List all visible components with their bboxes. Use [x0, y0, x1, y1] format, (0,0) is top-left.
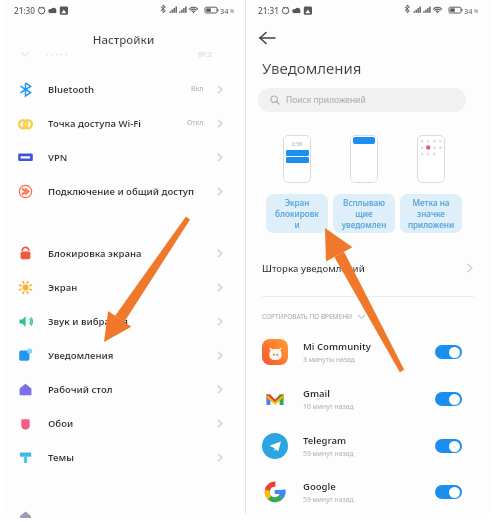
button[interactable]: Уведомления — [2, 338, 245, 372]
staticText: 34 — [220, 6, 229, 16]
staticText: Рабочий стол — [48, 383, 214, 396]
button[interactable]: Всплываю щие уведомлен — [333, 133, 395, 233]
button[interactable]: Подключение и общий доступ — [2, 174, 245, 208]
button[interactable]: Google — [246, 470, 490, 514]
staticText: Google — [303, 480, 336, 493]
staticText: 21:30 — [14, 5, 35, 16]
button[interactable]: Gmail — [246, 377, 490, 421]
button[interactable]: Звук и вибрация — [2, 304, 245, 338]
button[interactable]: Mi Community — [246, 330, 490, 374]
button[interactable]: Темы — [2, 440, 245, 474]
staticText: 59 минут назад — [303, 449, 354, 458]
button[interactable]: Метка на значке приложени — [400, 133, 462, 233]
staticText: Уведомления — [48, 349, 214, 362]
button[interactable]: 2:56 — [266, 133, 328, 233]
staticText: Telegram — [303, 434, 347, 447]
staticText: · · · · · — [46, 48, 68, 60]
staticText: 34 — [464, 6, 473, 16]
button[interactable]: Точка доступа Wi-Fi — [2, 106, 245, 140]
staticText: Настройки — [2, 32, 245, 48]
staticText: 10 минут назад — [303, 402, 354, 411]
staticText: 3 минуты назад — [303, 355, 355, 364]
staticText: % — [474, 8, 479, 15]
button[interactable]: СОРТИРОВАТЬ ПО ВРЕМЕНИ — [246, 308, 490, 324]
staticText: СОРТИРОВАТЬ ПО ВРЕМЕНИ — [262, 312, 352, 321]
button[interactable]: Back — [257, 27, 279, 49]
staticText: Метка на значке приложени — [404, 197, 458, 230]
staticText: % — [230, 8, 235, 15]
staticText: Вкл — [191, 84, 204, 94]
staticText: Экран — [48, 281, 214, 294]
button[interactable]: Экран — [2, 270, 245, 304]
staticText: Подключение и общий доступ — [48, 185, 214, 198]
staticText: Всплываю щие уведомлен — [336, 197, 392, 230]
button[interactable]: VPN — [2, 140, 245, 174]
button[interactable]: Обои — [2, 406, 245, 440]
staticText: Mi Community — [303, 340, 372, 353]
staticText: Блокировка экрана — [48, 247, 214, 260]
staticText: 2:56 — [283, 140, 311, 147]
staticText: Поиск приложений — [286, 94, 366, 106]
button[interactable]: Блокировка экрана — [2, 236, 245, 270]
staticText: Уведомления — [262, 58, 362, 78]
staticText: 21:31 — [258, 5, 279, 16]
staticText: Точка доступа Wi-Fi — [48, 117, 187, 130]
staticText: Обои — [48, 417, 214, 430]
button[interactable]: Bluetooth — [2, 72, 245, 106]
staticText: VPN — [48, 151, 214, 164]
staticText: 59 минут назад — [303, 495, 354, 504]
staticText: Темы — [48, 451, 214, 464]
staticText: Экран блокировки — [274, 197, 320, 230]
staticText: 6P:Z — [198, 50, 213, 60]
button[interactable]: Шторка уведомлений — [246, 254, 490, 282]
button[interactable]: Рабочий стол — [2, 372, 245, 406]
button[interactable]: Поиск приложений — [258, 88, 466, 112]
staticText: Звук и вибрация — [48, 315, 214, 328]
staticText: Gmail — [303, 387, 330, 400]
button[interactable]: Telegram — [246, 424, 490, 468]
staticText: Шторка уведомлений — [262, 262, 464, 275]
staticText: Откл — [187, 118, 204, 128]
staticText: Bluetooth — [48, 83, 191, 96]
